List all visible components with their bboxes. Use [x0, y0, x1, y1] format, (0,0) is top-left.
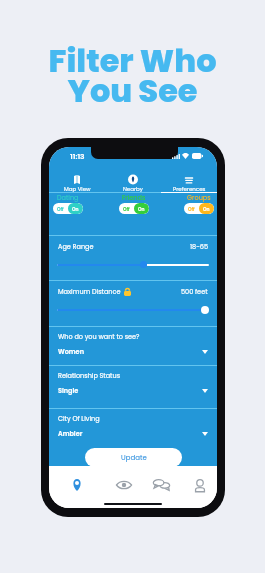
staticText: 11:13 [70, 151, 85, 161]
staticText: On [138, 206, 145, 212]
button[interactable] [201, 306, 209, 314]
button[interactable]: Dating [53, 193, 83, 214]
button[interactable]: Friends [119, 193, 149, 214]
button[interactable]: Messages [146, 474, 176, 496]
button[interactable]: Who do you want to see? [49, 327, 217, 365]
staticText: 18-65 [190, 242, 208, 251]
staticText: City Of Living [58, 414, 100, 423]
staticText: Single [58, 386, 79, 395]
staticText: Maximum Distance [58, 287, 121, 296]
staticText: Nearby [123, 185, 143, 193]
staticText: Map View [64, 185, 91, 193]
staticText: Who do you want to see? [58, 332, 140, 341]
button[interactable] [140, 261, 147, 268]
staticText: Relationship Status [58, 371, 121, 380]
staticText: On [72, 206, 79, 212]
button[interactable]: Profile [185, 474, 215, 496]
button[interactable]: Groups [184, 193, 214, 214]
staticText: Women [58, 347, 84, 356]
button[interactable]: Map [62, 474, 92, 496]
staticText: On [203, 206, 210, 212]
staticText: Filter Who You See [48, 38, 217, 113]
staticText: Off [123, 206, 130, 212]
staticText: Groups [187, 193, 211, 202]
staticText: 500 feet [181, 287, 208, 296]
staticText: Off [188, 206, 195, 212]
staticText: Ambler [58, 429, 83, 438]
staticText: Preferences [173, 185, 206, 193]
staticText: Age Range [58, 242, 94, 251]
button[interactable]: Update [85, 448, 182, 467]
staticText: Friends [122, 193, 146, 202]
button[interactable]: Preferences [161, 164, 217, 192]
button[interactable]: Discover [109, 474, 139, 496]
staticText: Update [121, 453, 147, 463]
button[interactable]: Map View [49, 164, 105, 192]
button[interactable]: Relationship Status [49, 366, 217, 408]
button[interactable]: Nearby [105, 164, 161, 192]
staticText: Dating [57, 193, 79, 202]
button[interactable]: City Of Living [49, 409, 217, 450]
staticText: Off [57, 206, 64, 212]
